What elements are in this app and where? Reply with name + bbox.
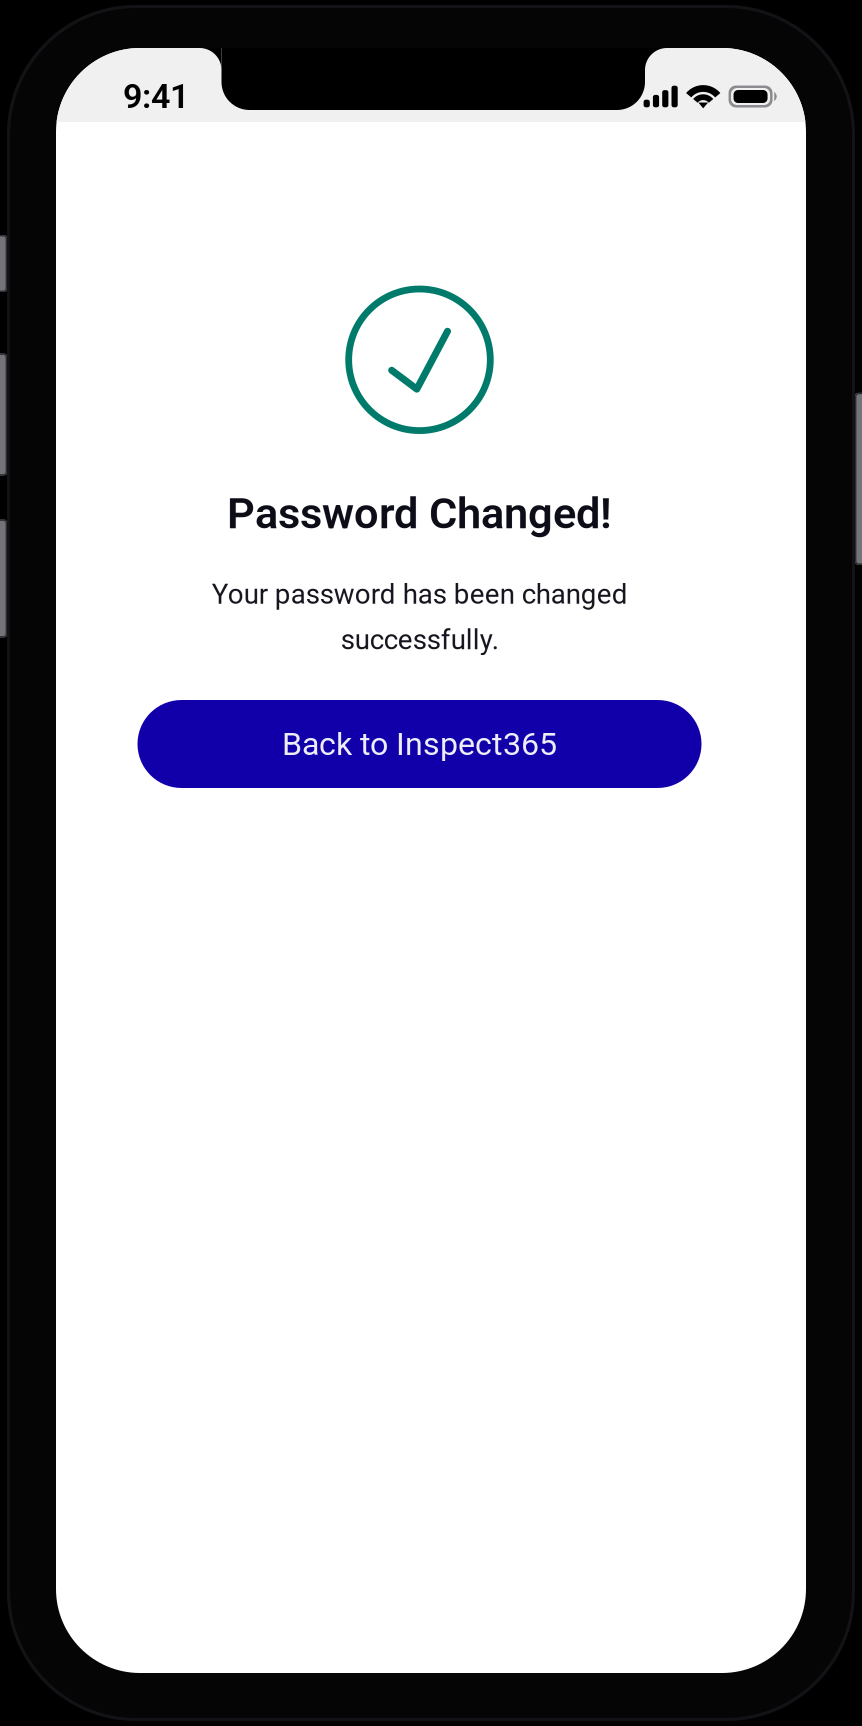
button[interactable]: Back to Inspect365 xyxy=(137,700,701,788)
staticText: 9:41 xyxy=(123,77,189,116)
staticText: Back to Inspect365 xyxy=(282,725,557,763)
staticText: Your password has been changed successfu… xyxy=(211,578,627,656)
staticText: Password Changed! xyxy=(227,488,612,539)
